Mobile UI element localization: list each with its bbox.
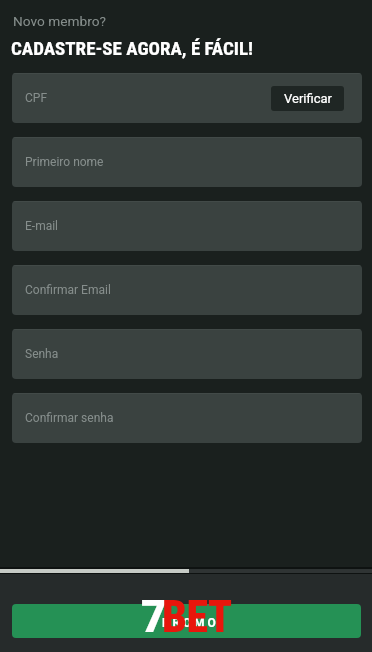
button[interactable]: Verificar — [271, 86, 344, 111]
button[interactable]: Confirmar senha — [12, 393, 362, 443]
staticText: Confirmar senha — [25, 411, 114, 425]
button[interactable]: PROMO — [12, 604, 361, 638]
button[interactable]: Primeiro nome — [12, 137, 362, 187]
staticText: Senha — [25, 347, 59, 361]
staticText: 7 — [141, 591, 167, 643]
staticText: CADASTRE-SE AGORA, É FÁCIL! — [11, 37, 254, 59]
button[interactable]: E-mail — [12, 201, 362, 251]
staticText: Primeiro nome — [25, 155, 104, 169]
staticText: Novo membro? — [13, 13, 106, 29]
button[interactable]: Confirmar Email — [12, 265, 362, 315]
other: 7BET logo — [141, 591, 237, 643]
button[interactable]: CPF — [12, 73, 362, 123]
button[interactable]: Senha — [12, 329, 362, 379]
staticText: Confirmar Email — [25, 283, 111, 297]
staticText: CPF — [25, 91, 48, 105]
staticText: BET — [162, 591, 232, 643]
staticText: PROMO — [162, 616, 219, 630]
staticText: Verificar — [284, 91, 332, 106]
staticText: E-mail — [25, 219, 59, 233]
